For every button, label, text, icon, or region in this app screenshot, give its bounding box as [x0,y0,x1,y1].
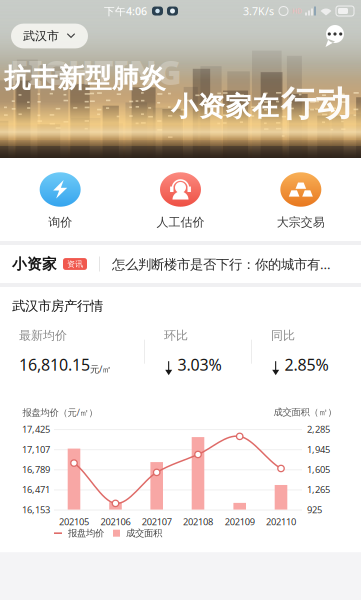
button[interactable]: 大宗交易 [241,158,361,241]
staticText: 小资家在 [171,90,279,123]
staticText: 大宗交易 [277,215,325,230]
staticText: 人工估价 [156,215,204,230]
staticText: 202106 [100,515,130,528]
staticText: 下午4:06 [104,4,147,18]
staticText: 同比 [271,328,295,343]
staticText: 最新均价 [19,328,67,343]
staticText: 询价 [48,215,72,230]
staticText: 报盘均价（元/㎡） [22,406,97,418]
staticText: 行动 [281,83,351,125]
staticText: 怎么判断楼市是否下行：你的城市有… [112,255,331,273]
staticText: 202109 [225,515,255,528]
staticText: 17,107 [22,443,50,455]
staticText: 16,153 [22,503,50,516]
staticText: 武汉市 [23,29,59,43]
staticText: 2,285 [307,423,330,435]
staticText: 925 [307,503,322,516]
staticText: 元/㎡ [90,363,111,375]
staticText: 资讯 [67,259,83,269]
staticText: 小资家 [12,255,57,273]
button[interactable]: 询价 [0,158,120,241]
staticText: 抗击新型肺炎 [4,62,166,94]
staticText: 3.7K/s [243,4,274,18]
staticText: 16,471 [22,483,50,496]
button[interactable]: Messages [322,25,348,47]
staticText: 1,945 [307,443,330,455]
staticText: 3.03% [177,354,221,375]
staticText: 成交面积（㎡） [273,406,336,418]
staticText: 环比 [164,328,188,343]
button[interactable]: 武汉市 [11,24,88,48]
staticText: 202107 [142,515,172,528]
staticText: HD [292,7,302,15]
button[interactable]: 小资家 [0,245,361,283]
button[interactable]: 人工估价 [120,158,241,241]
staticText: 17,425 [22,423,50,435]
staticText: 16,810.15 [19,354,90,375]
staticText: FIGHTING [10,50,182,94]
staticText: 202105 [59,515,89,528]
staticText: 202110 [266,515,296,528]
staticText: 成交面积 [126,527,162,539]
staticText: 报盘均价 [68,527,104,539]
staticText: 1,605 [307,463,330,476]
staticText: 202108 [183,515,213,528]
staticText: 武汉市房产行情 [12,298,103,314]
staticText: 16,789 [22,463,50,476]
staticText: 1,265 [307,483,330,496]
staticText: 2.85% [284,354,328,375]
